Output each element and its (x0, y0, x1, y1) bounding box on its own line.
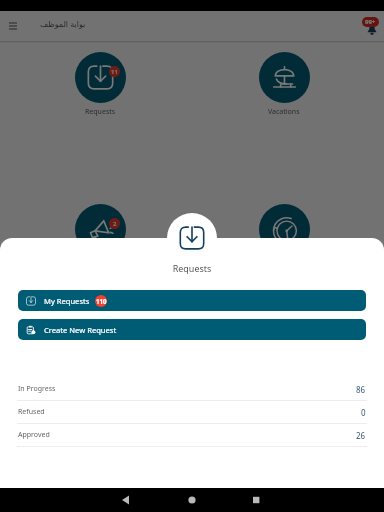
staticText: Create New Request (44, 325, 117, 335)
button[interactable]: 11 (8, 52, 192, 117)
staticText: 110 (96, 297, 107, 305)
button[interactable]: Create New Request (18, 319, 366, 340)
staticText: بوابة الموظف (40, 18, 86, 29)
button[interactable]: Requests (167, 213, 217, 263)
button[interactable]: Vacations (192, 52, 376, 117)
staticText: 26 (356, 430, 366, 441)
button[interactable]: Notifications (354, 13, 380, 39)
staticText: 11 (111, 68, 118, 76)
staticText: 86 (356, 384, 366, 395)
button[interactable]: Menu (2, 15, 24, 37)
staticText: Approved (18, 430, 50, 440)
staticText: Requests (0, 262, 384, 274)
staticText: 99+ (365, 18, 376, 26)
staticText: In Progress (18, 384, 56, 394)
button[interactable]: In Progress (0, 378, 384, 401)
button[interactable]: Attendance (192, 204, 376, 269)
staticText: 2 (113, 220, 117, 228)
button[interactable]: Refused (0, 401, 384, 424)
button[interactable]: 2 (8, 204, 192, 269)
button[interactable]: My Requests (18, 290, 366, 311)
staticText: Requests (85, 107, 116, 117)
staticText: Vacations (268, 107, 300, 117)
staticText: My Requests (44, 296, 90, 306)
button[interactable]: Approved (0, 424, 384, 447)
staticText: 0 (361, 407, 366, 418)
staticText: Refused (18, 407, 45, 417)
